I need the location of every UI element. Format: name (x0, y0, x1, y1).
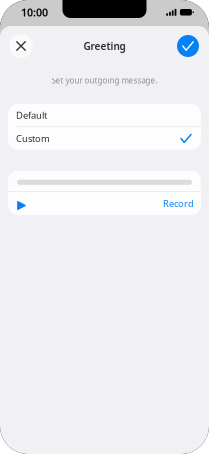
button[interactable]: Play (17, 192, 33, 215)
staticText: Set your outgoing message. (51, 75, 157, 86)
staticText: Default (16, 109, 47, 121)
button[interactable]: Record (163, 192, 194, 215)
staticText: Custom (16, 132, 50, 145)
button[interactable]: Done (177, 35, 199, 57)
button[interactable]: Default (8, 104, 201, 126)
button[interactable]: Close (9, 34, 33, 58)
staticText: 10:00 (21, 5, 48, 19)
staticText: Greeting (83, 39, 125, 53)
staticText: Record (163, 197, 194, 210)
button[interactable]: Custom (8, 127, 201, 150)
